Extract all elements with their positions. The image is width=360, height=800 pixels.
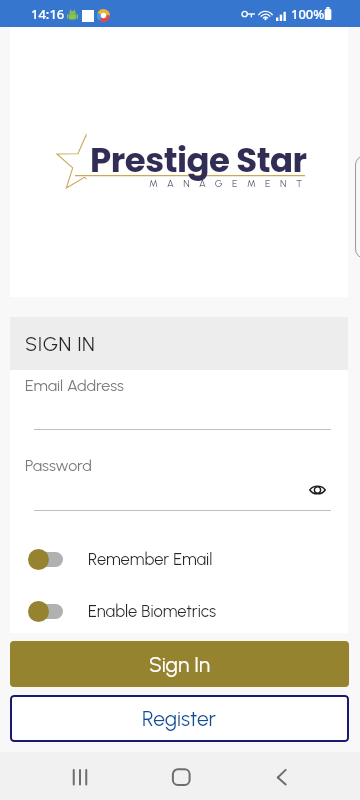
staticText: Register bbox=[142, 706, 217, 731]
button[interactable]: Home bbox=[166, 768, 196, 786]
button[interactable]: Enable Biometrics bbox=[10, 598, 348, 624]
staticText: Prestige Star bbox=[90, 136, 307, 184]
staticText: Password bbox=[25, 456, 92, 475]
button[interactable]: Show password bbox=[300, 473, 334, 507]
button[interactable]: Back bbox=[270, 768, 294, 786]
staticText: Remember Email bbox=[88, 549, 213, 569]
staticText: Sign In bbox=[149, 652, 211, 677]
button[interactable]: Register bbox=[10, 695, 349, 742]
button[interactable]: Remember Email bbox=[10, 546, 348, 572]
staticText: 100% bbox=[291, 5, 325, 23]
staticText: SIGN IN bbox=[25, 332, 96, 356]
staticText: MANAGEMENT bbox=[149, 177, 312, 189]
button[interactable]: Recent apps bbox=[68, 768, 92, 786]
button[interactable]: Sign In bbox=[10, 641, 349, 687]
staticText: Email Address bbox=[25, 376, 124, 395]
staticText: 14:16 bbox=[31, 5, 65, 23]
staticText: Enable Biometrics bbox=[88, 601, 217, 621]
